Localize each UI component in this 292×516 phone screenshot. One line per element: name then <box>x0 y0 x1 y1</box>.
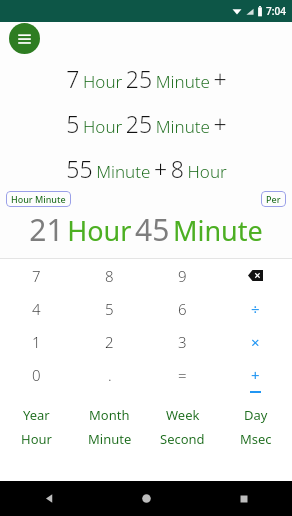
button[interactable]: + <box>219 358 292 391</box>
staticText: + <box>251 365 260 385</box>
staticText: 2 <box>105 332 114 352</box>
staticText: 5 Hour 25 Minute + <box>66 108 227 139</box>
staticText: 4 <box>32 299 41 319</box>
staticText: 1 <box>32 332 41 352</box>
button[interactable]: Day <box>219 403 292 427</box>
button[interactable]: Back <box>0 481 98 516</box>
button[interactable]: Msec <box>219 427 292 451</box>
button[interactable]: Recents <box>195 481 292 516</box>
button[interactable]: 9 <box>146 259 219 292</box>
staticText: Second <box>160 430 205 448</box>
staticText: Year <box>23 406 50 424</box>
button[interactable]: Home <box>98 481 195 516</box>
staticText: 21 Hour 45 Minute <box>29 209 263 250</box>
button[interactable]: Per <box>261 191 286 207</box>
button[interactable]: 3 <box>146 325 219 358</box>
button[interactable]: ÷ <box>219 292 292 325</box>
staticText: 55 Minute + 8 Hour <box>66 153 227 184</box>
staticText: Month <box>89 406 130 424</box>
staticText: Hour <box>21 430 52 448</box>
staticText: 7:04 <box>266 4 286 18</box>
button[interactable]: Hour Minute <box>6 191 71 207</box>
button[interactable]: 4 <box>0 292 73 325</box>
button[interactable]: 0 <box>0 358 73 391</box>
staticText: × <box>251 332 260 352</box>
staticText: . <box>108 365 112 385</box>
button[interactable]: 6 <box>146 292 219 325</box>
staticText: 6 <box>178 299 187 319</box>
staticText: 0 <box>32 365 41 385</box>
staticText: 9 <box>178 266 187 286</box>
staticText: 5 <box>105 299 114 319</box>
button[interactable]: Month <box>73 403 146 427</box>
staticText: Hour Minute <box>11 193 66 205</box>
button[interactable]: × <box>219 325 292 358</box>
button[interactable]: 55 Minute + 8 Hour <box>0 146 292 191</box>
button[interactable]: 1 <box>0 325 73 358</box>
button[interactable]: 7 Hour 25 Minute + <box>0 56 292 101</box>
button[interactable] <box>219 391 292 403</box>
staticText: Day <box>244 406 268 424</box>
button[interactable]: Minute <box>73 427 146 451</box>
staticText: 8 <box>105 266 114 286</box>
staticText: 3 <box>178 332 187 352</box>
staticText: Per <box>266 193 281 205</box>
button[interactable]: Backspace <box>219 259 292 292</box>
button[interactable]: Week <box>146 403 219 427</box>
button[interactable]: 5 <box>73 292 146 325</box>
button[interactable]: 7 <box>0 259 73 292</box>
staticText: ÷ <box>251 299 260 319</box>
button[interactable]: 21 Hour 45 Minute <box>0 207 292 251</box>
staticText: Week <box>166 406 200 424</box>
button[interactable]: = <box>146 358 219 391</box>
button[interactable]: Menu <box>9 23 40 54</box>
button[interactable]: 5 Hour 25 Minute + <box>0 101 292 146</box>
staticText: Minute <box>88 430 132 448</box>
button[interactable]: Hour <box>0 427 73 451</box>
button[interactable]: 2 <box>73 325 146 358</box>
staticText: Msec <box>240 430 272 448</box>
button[interactable]: Second <box>146 427 219 451</box>
staticText: 7 Hour 25 Minute + <box>66 63 227 94</box>
button[interactable]: Year <box>0 403 73 427</box>
staticText: 7 <box>32 266 41 286</box>
staticText: = <box>178 365 187 385</box>
button[interactable]: 8 <box>73 259 146 292</box>
